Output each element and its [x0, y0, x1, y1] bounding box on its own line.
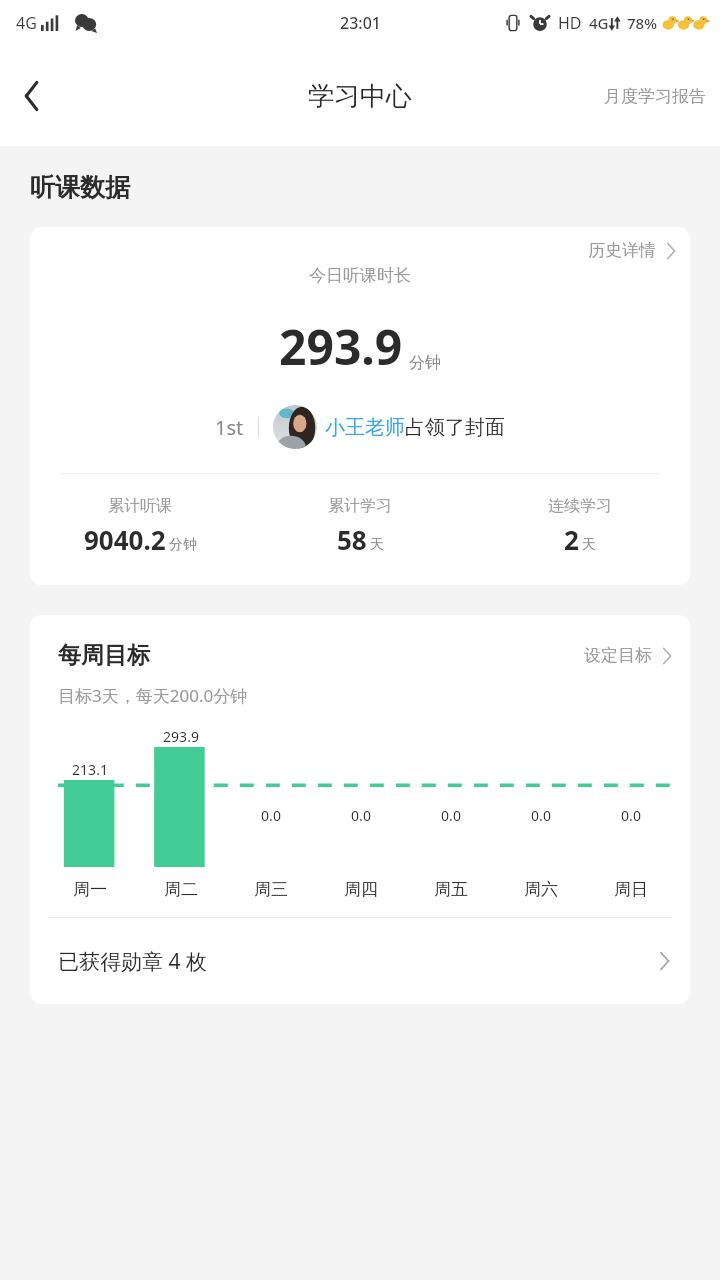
button[interactable]: 设定目标 — [580, 639, 676, 672]
staticText: 293.9 — [163, 727, 199, 746]
staticText: 周四 — [344, 879, 378, 900]
staticText: 4G — [16, 12, 37, 34]
staticText: 78% — [627, 13, 657, 33]
button[interactable]: 月度学习报告 — [590, 66, 720, 127]
staticText: 天 — [370, 536, 384, 554]
staticText: 学习中心 — [308, 80, 412, 113]
staticText: 周六 — [524, 879, 558, 900]
staticText: 分钟 — [409, 353, 441, 373]
staticText: HD — [558, 12, 582, 34]
staticText: 0.0 — [441, 806, 461, 825]
staticText: 天 — [582, 536, 596, 554]
staticText: 0.0 — [621, 806, 641, 825]
staticText: 0.0 — [351, 806, 371, 825]
button[interactable]: 历史详情 — [572, 232, 690, 269]
staticText: 9040.2 — [84, 522, 166, 557]
staticText: 设定目标 — [584, 645, 652, 666]
staticText: 0.0 — [531, 806, 551, 825]
staticText: 历史详情 — [588, 240, 656, 261]
staticText: 累计听课 — [108, 496, 172, 516]
button[interactable]: 已获得勋章 4 枚 — [30, 918, 690, 1004]
staticText: 占领了封面 — [405, 415, 505, 440]
staticText: 已获得勋章 4 枚 — [58, 947, 207, 976]
staticText: 连续学习 — [548, 496, 612, 516]
staticText: 分钟 — [169, 536, 197, 554]
staticText: 目标3天，每天200.0分钟 — [58, 684, 248, 707]
staticText: 23:01 — [340, 12, 381, 34]
staticText: 听课数据 — [30, 172, 130, 203]
staticText: 周日 — [614, 879, 648, 900]
staticText: 58 — [337, 522, 367, 557]
staticText: 4G — [589, 13, 609, 33]
staticText: 周五 — [434, 879, 468, 900]
staticText: 累计学习 — [328, 496, 392, 516]
button[interactable]: 累计听课 — [30, 496, 250, 557]
staticText: 周一 — [73, 879, 107, 900]
button[interactable]: 连续学习 — [470, 496, 690, 557]
button[interactable]: Back — [0, 64, 64, 128]
button[interactable]: 累计学习 — [250, 496, 470, 557]
staticText: 今日听课时长 — [30, 265, 690, 286]
staticText: 每周目标 — [58, 641, 150, 670]
staticText: 213.1 — [72, 760, 108, 779]
staticText: 2 — [564, 522, 579, 557]
staticText: 小王老师 — [325, 415, 405, 440]
staticText: 293.9 — [279, 314, 403, 379]
staticText: 月度学习报告 — [604, 86, 706, 107]
staticText: 周三 — [254, 879, 288, 900]
staticText: 周二 — [164, 879, 198, 900]
staticText: 0.0 — [261, 806, 281, 825]
button[interactable]: 1st — [30, 405, 690, 449]
staticText: 1st — [215, 414, 244, 441]
